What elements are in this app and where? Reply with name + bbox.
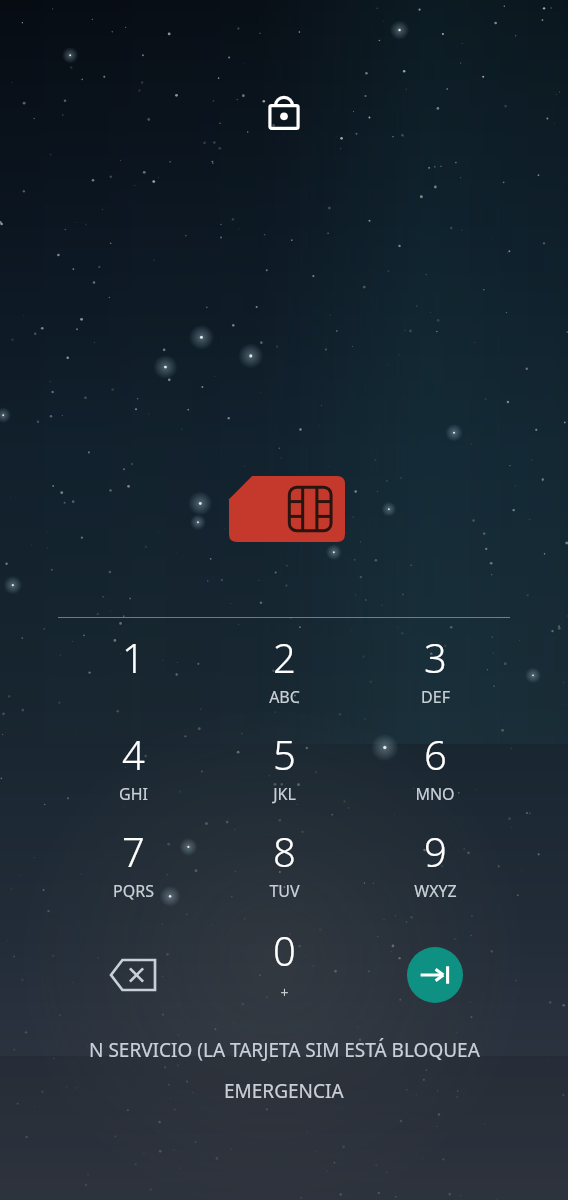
staticText: 8 — [273, 824, 296, 878]
staticText: 5 — [273, 727, 296, 781]
staticText: + — [280, 983, 289, 1002]
staticText: 1 — [122, 630, 145, 684]
button[interactable]: 2 — [224, 630, 344, 722]
staticText: 0 — [273, 923, 296, 977]
staticText: 9 — [424, 824, 447, 878]
button[interactable]: Backspace — [95, 941, 171, 1009]
staticText: MNO — [415, 783, 455, 805]
staticText: 3 — [424, 630, 447, 684]
button[interactable]: 9 — [375, 824, 495, 916]
staticText: TUV — [269, 880, 300, 902]
button[interactable]: 3 — [375, 630, 495, 722]
button[interactable]: 8 — [224, 824, 344, 916]
button[interactable]: 6 — [375, 727, 495, 819]
staticText: GHI — [119, 783, 148, 805]
button[interactable]: 7 — [73, 824, 193, 916]
other: Locked — [268, 88, 300, 130]
button[interactable]: 1 — [73, 630, 193, 722]
button[interactable]: 0 — [224, 923, 344, 1015]
staticText: PQRS — [113, 880, 154, 902]
button[interactable]: 5 — [224, 727, 344, 819]
staticText: EMERGENCIA — [224, 1078, 344, 1104]
staticText: DEF — [421, 686, 450, 708]
staticText: JKL — [273, 783, 296, 805]
staticText: 2 — [273, 630, 296, 684]
button[interactable]: 4 — [73, 727, 193, 819]
staticText: WXYZ — [414, 880, 457, 902]
button[interactable]: Enter — [407, 947, 463, 1003]
staticText: 4 — [122, 727, 145, 781]
staticText: 7 — [122, 824, 145, 878]
staticText: 6 — [424, 727, 447, 781]
staticText: ABC — [269, 686, 300, 708]
staticText: N SERVICIO (LA TARJETA SIM ESTÁ BLOQUEA — [89, 1037, 480, 1063]
